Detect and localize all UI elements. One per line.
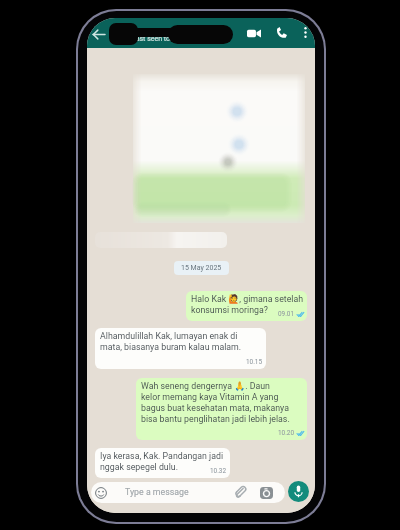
button[interactable]: 15 May 2025 [181, 264, 222, 272]
staticText: 10.20 [278, 429, 295, 437]
button[interactable]: Halo Kak 🙋, gimana setelah konsumsi mori… [186, 291, 307, 321]
button[interactable]: Back [90, 26, 106, 42]
staticText: 09.01 [278, 310, 295, 318]
staticText: 15 May 2025 [181, 264, 222, 272]
button[interactable]: Iya kerasa, Kak. Pandangan jadi nggak se… [95, 448, 230, 478]
button[interactable]: Record voice message [288, 481, 309, 502]
button[interactable]: Emoji [94, 486, 107, 499]
button[interactable]: Emoji [91, 482, 285, 503]
button[interactable]: More options [298, 25, 312, 39]
button[interactable]: Video call [246, 25, 262, 41]
staticText: 10.32 [210, 467, 227, 475]
staticText: Alhamdulillah Kak, lumayan enak di mata,… [100, 331, 242, 352]
button[interactable]: last seen today [107, 20, 207, 46]
button[interactable]: Call [273, 24, 289, 40]
button[interactable]: Wah seneng dengernya 🙏. Daun kelor meman… [136, 378, 307, 440]
button[interactable]: Camera [259, 486, 273, 500]
staticText: 10.15 [246, 358, 263, 366]
staticText: Halo Kak 🙋, gimana setelah konsumsi mori… [191, 294, 304, 315]
staticText: Type a message [125, 487, 189, 497]
staticText: Wah seneng dengernya 🙏. Daun kelor meman… [141, 381, 290, 424]
button[interactable]: Attach [233, 485, 248, 500]
button[interactable]: Alhamdulillah Kak, lumayan enak di mata,… [95, 328, 266, 369]
staticText: Iya kerasa, Kak. Pandangan jadi nggak se… [100, 451, 224, 472]
staticText: last seen today [134, 35, 182, 43]
